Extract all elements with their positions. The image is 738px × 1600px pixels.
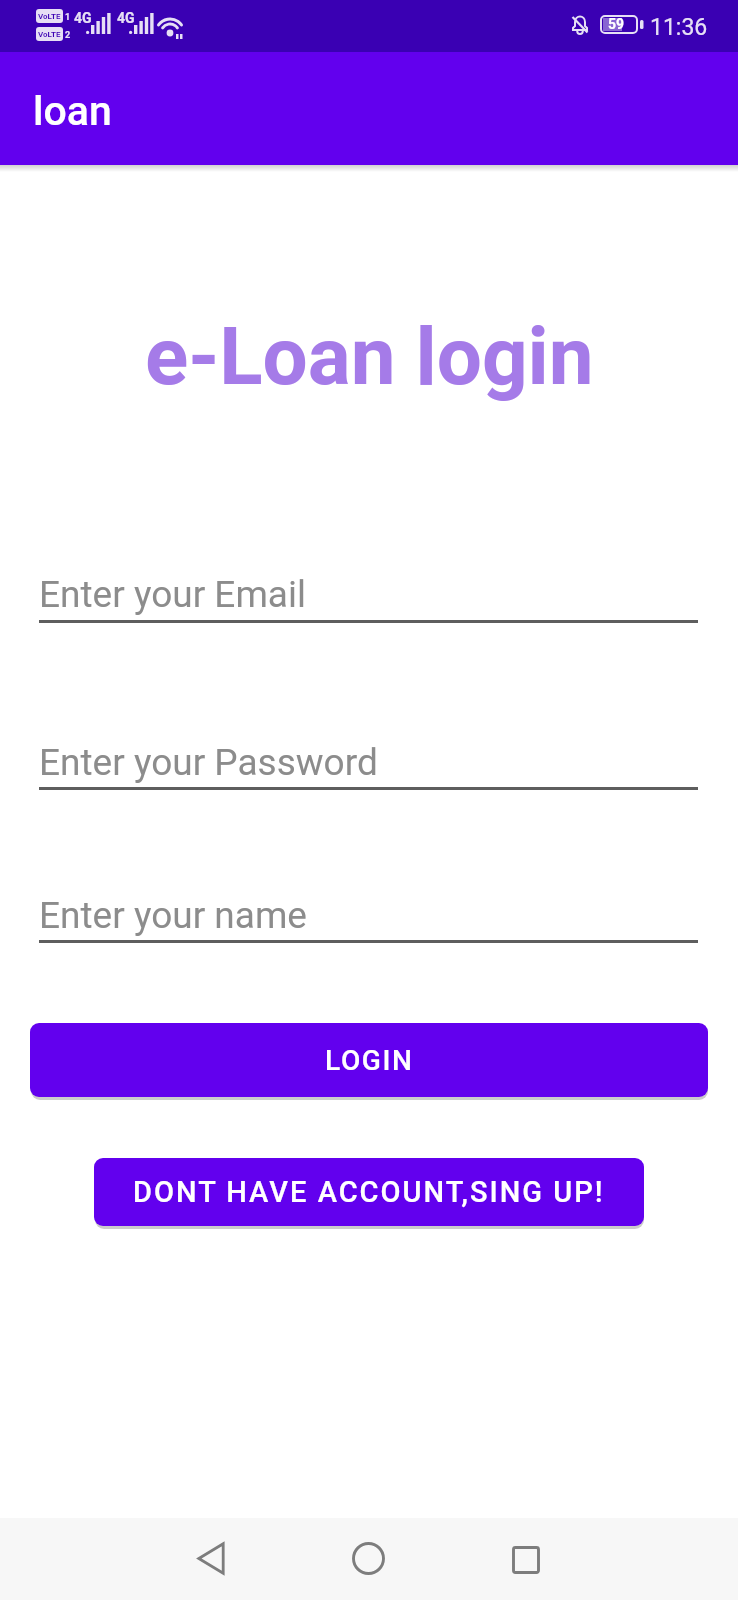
staticText: 1 — [65, 12, 71, 23]
button[interactable]: DONT HAVE ACCOUNT,SING UP! — [94, 1158, 644, 1226]
staticText: 4G — [117, 10, 135, 26]
staticText: Enter your Email — [39, 573, 306, 616]
button[interactable] — [512, 1546, 540, 1574]
staticText: Enter your name — [39, 894, 307, 937]
button[interactable]: LOGIN — [30, 1023, 708, 1097]
staticText: Enter your Password — [39, 741, 378, 784]
staticText: e-Loan login — [145, 310, 594, 404]
staticText: LOGIN — [325, 1044, 414, 1077]
staticText: VoLTE — [38, 12, 61, 21]
button[interactable] — [197, 1542, 225, 1575]
staticText: 2 — [65, 30, 71, 41]
staticText: 59 — [608, 16, 625, 32]
staticText: 11:36 — [650, 14, 708, 41]
staticText: DONT HAVE ACCOUNT,SING UP! — [133, 1175, 605, 1209]
staticText: 4G — [74, 10, 92, 26]
staticText: VoLTE — [38, 30, 61, 39]
staticText: loan — [33, 87, 112, 135]
button[interactable] — [352, 1542, 385, 1575]
